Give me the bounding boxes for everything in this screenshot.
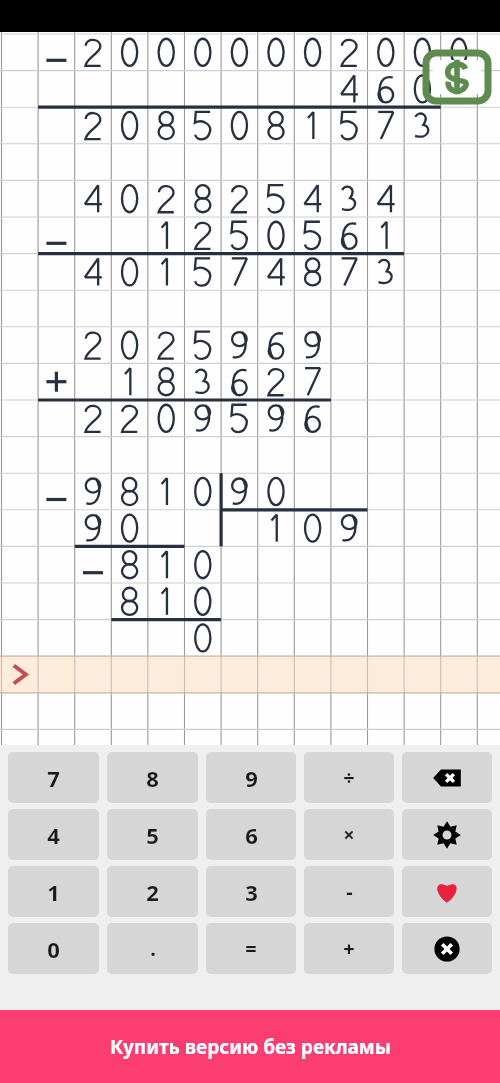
staticText: .	[150, 935, 156, 962]
staticText: +	[343, 935, 355, 962]
staticText: 1	[47, 877, 60, 907]
button[interactable]: Favorite	[402, 866, 492, 917]
button[interactable]: Remove ads	[424, 51, 490, 103]
button[interactable]: 5	[107, 809, 198, 860]
button[interactable]: 7	[8, 752, 99, 803]
staticText: ÷	[343, 764, 355, 791]
button[interactable]: 2	[107, 866, 198, 917]
button[interactable]: 6	[206, 809, 296, 860]
button[interactable]: Backspace	[402, 752, 492, 803]
button[interactable]: Settings	[402, 809, 492, 860]
staticText: 5	[146, 820, 159, 850]
button[interactable]: =	[206, 923, 296, 974]
staticText: 4	[47, 820, 60, 850]
staticText: -	[346, 878, 353, 905]
staticText: 9	[245, 763, 258, 793]
button[interactable]: Купить версию без рекламы	[0, 1010, 500, 1083]
staticText: ×	[343, 821, 355, 848]
staticText: 2	[146, 877, 159, 907]
staticText: 8	[146, 763, 159, 793]
button[interactable]: Clear	[402, 923, 492, 974]
button[interactable]: ÷	[304, 752, 394, 803]
button[interactable]: 1	[8, 866, 99, 917]
button[interactable]: 3	[206, 866, 296, 917]
staticText: Купить версию без рекламы	[110, 1034, 391, 1060]
staticText: 0	[47, 934, 60, 964]
staticText: 7	[47, 763, 60, 793]
button[interactable]: .	[107, 923, 198, 974]
button[interactable]: +	[304, 923, 394, 974]
button[interactable]: -	[304, 866, 394, 917]
staticText: =	[245, 935, 257, 962]
staticText: 6	[245, 820, 258, 850]
button[interactable]: 8	[107, 752, 198, 803]
button[interactable]: 9	[206, 752, 296, 803]
button[interactable]: ×	[304, 809, 394, 860]
staticText: 3	[245, 877, 258, 907]
button[interactable]: 4	[8, 809, 99, 860]
button[interactable]: 0	[8, 923, 99, 974]
